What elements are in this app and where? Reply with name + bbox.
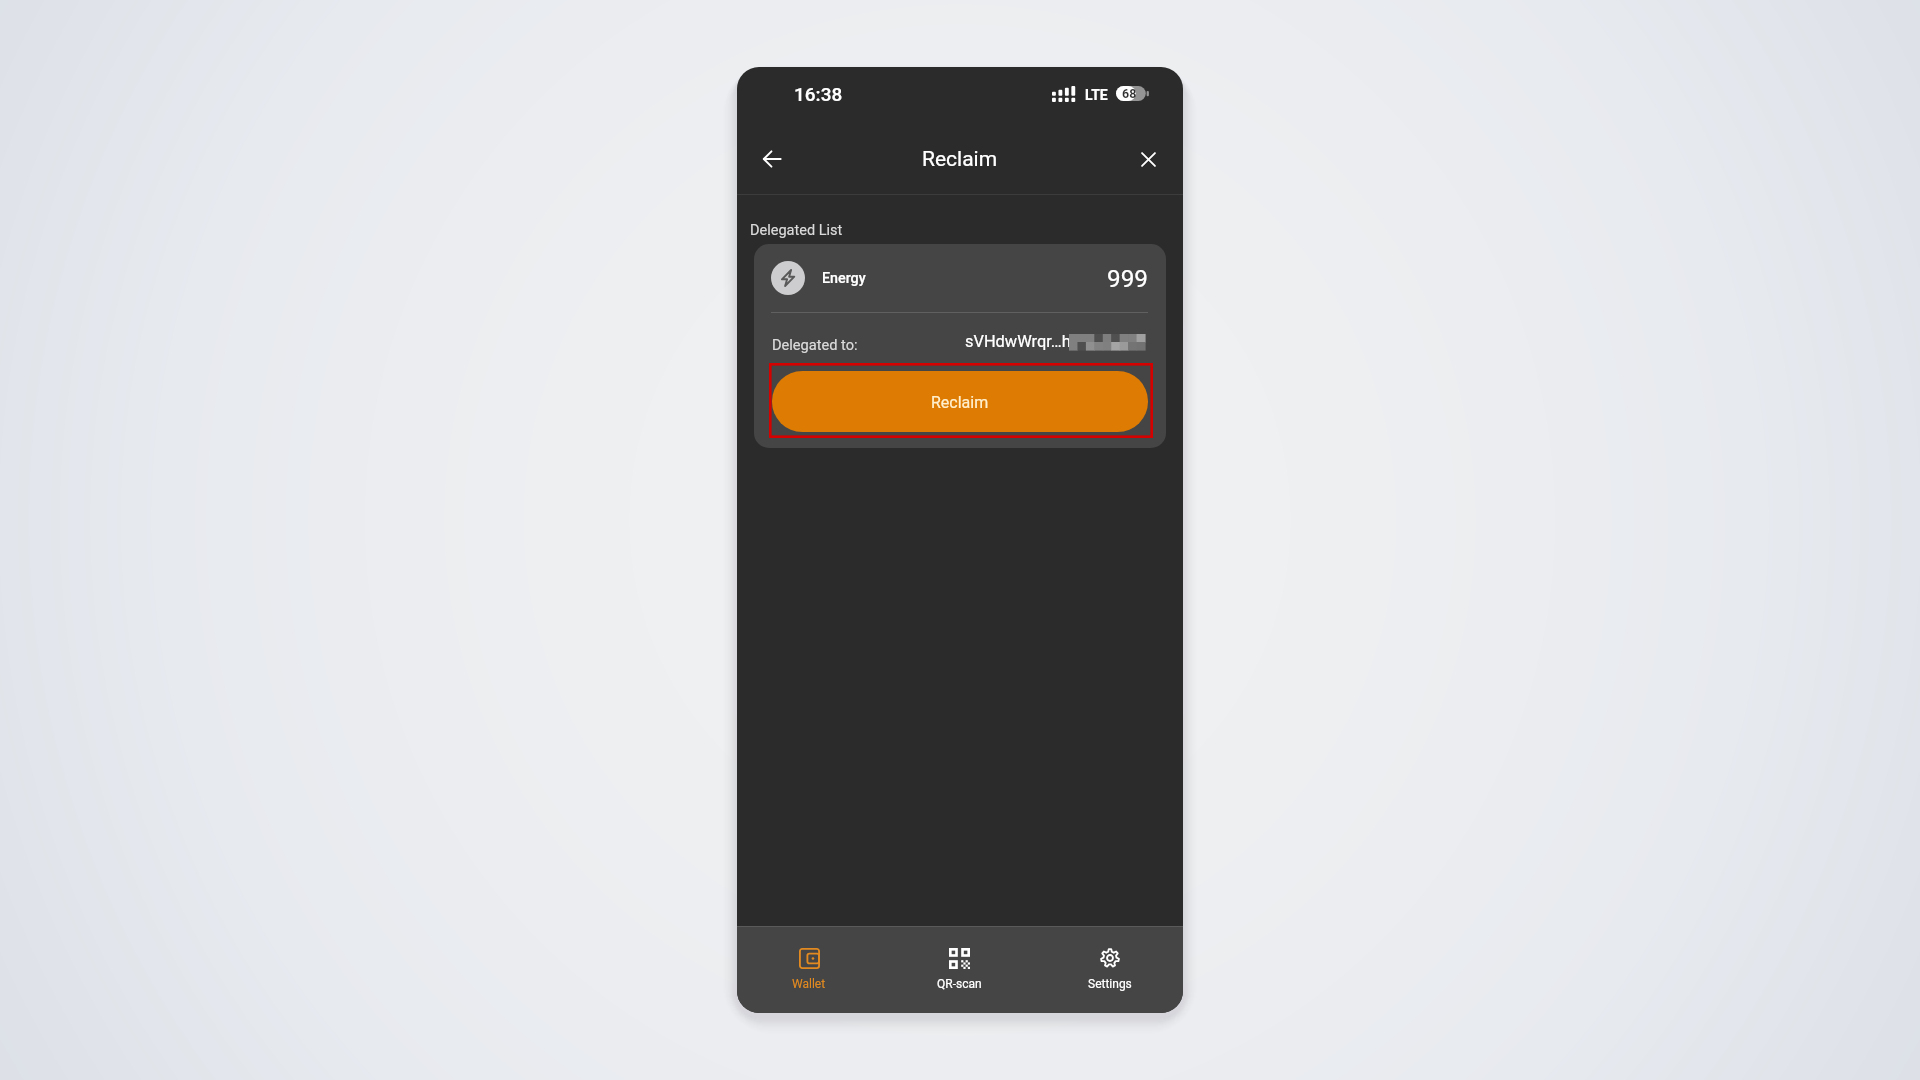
staticText: Settings — [1088, 977, 1132, 991]
button[interactable]: Reclaim — [772, 371, 1148, 432]
staticText: Reclaim — [922, 147, 998, 172]
staticText: Energy — [822, 270, 866, 287]
button[interactable]: Close — [1126, 137, 1170, 181]
staticText: Delegated List — [750, 222, 843, 239]
staticText: 16:38 — [794, 83, 843, 105]
button[interactable]: QR-scan — [885, 927, 1034, 1013]
staticText: Wallet — [792, 977, 826, 991]
staticText: 999 — [1107, 264, 1148, 292]
staticText: QR-scan — [937, 977, 982, 991]
staticText: 68 — [1122, 86, 1137, 101]
button[interactable]: Settings — [1034, 927, 1183, 1013]
button[interactable]: Back — [750, 137, 794, 181]
staticText: Reclaim — [931, 393, 989, 412]
staticText: Delegated to: — [772, 336, 858, 353]
button[interactable]: Wallet — [737, 927, 885, 1013]
staticText: LTE — [1085, 87, 1108, 103]
staticText: sVHdwWrqr…h — [965, 332, 1071, 351]
